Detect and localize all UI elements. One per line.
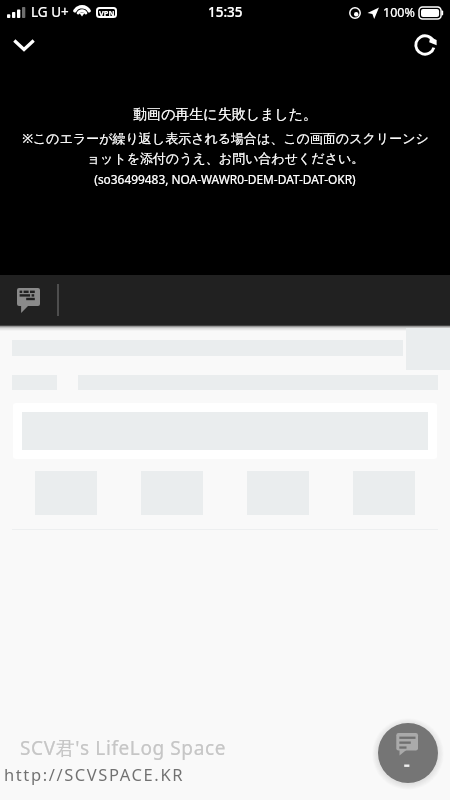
button[interactable]: Refresh (406, 26, 444, 64)
button[interactable]: Comments (0, 275, 57, 325)
button[interactable]: Video details (0, 331, 450, 390)
button[interactable]: Collapse (5, 26, 43, 64)
staticText: 動画の再生に失敗しました。 (133, 106, 317, 124)
staticText: (so36499483, NOA-WAWR0-DEM-DAT-DAT-OKR) (94, 171, 356, 187)
staticText: VPN (99, 8, 115, 18)
staticText: 15:35 (208, 3, 243, 21)
button[interactable]: Comments (378, 723, 438, 783)
staticText: 100% (383, 4, 415, 21)
staticText: LG U+ (31, 3, 69, 21)
staticText: http://SCVSPACE.KR (4, 763, 185, 785)
staticText: SCV君's LifeLog Space (20, 735, 226, 761)
staticText: ※このエラーが繰り返し表示される場合は、この画面のスクリーンシ ョットを添付のう… (22, 129, 429, 167)
button[interactable]: Channel card (13, 403, 437, 459)
